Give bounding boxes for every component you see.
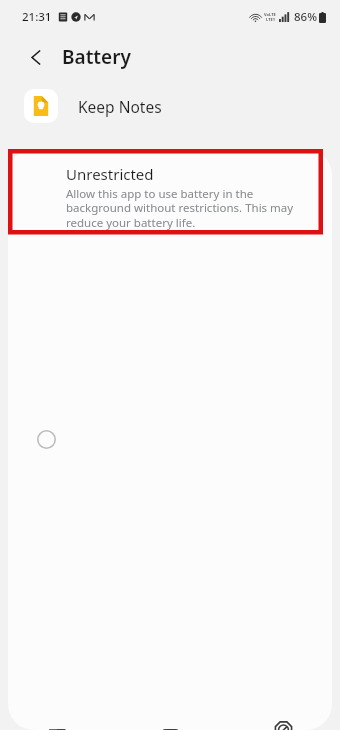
- staticText: 86%: [294, 9, 317, 25]
- staticText: Keep Notes: [78, 96, 162, 117]
- button[interactable]: Back: [20, 41, 52, 73]
- staticText: Battery: [62, 44, 131, 70]
- staticText: Unrestricted: [66, 164, 154, 184]
- staticText: Allow this app to use battery in the bac…: [66, 186, 294, 231]
- staticText: LTE1: [266, 17, 275, 22]
- staticText: 21:31: [22, 9, 52, 25]
- button[interactable]: Unrestricted: [8, 149, 332, 730]
- staticText: VoLTE: [264, 12, 276, 17]
